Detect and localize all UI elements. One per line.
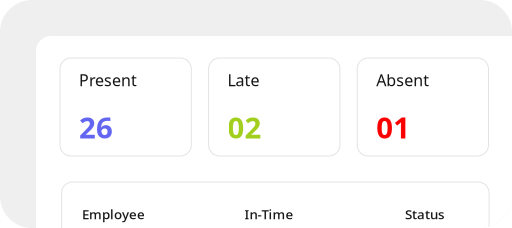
staticText: In-Time <box>244 205 293 223</box>
button[interactable]: Late <box>209 58 340 156</box>
staticText: 26 <box>79 107 113 146</box>
staticText: Present <box>79 69 137 91</box>
staticText: Late <box>228 69 260 91</box>
button[interactable]: Present <box>60 58 191 156</box>
staticText: 01 <box>376 107 410 146</box>
button[interactable]: In-Time <box>244 207 405 221</box>
staticText: Absent <box>376 69 429 91</box>
button[interactable]: Status <box>405 207 444 221</box>
staticText: 02 <box>228 107 262 146</box>
button[interactable]: Absent <box>357 58 488 156</box>
staticText: Employee <box>82 205 145 223</box>
staticText: Status <box>405 205 444 223</box>
button[interactable]: Employee <box>82 207 244 221</box>
